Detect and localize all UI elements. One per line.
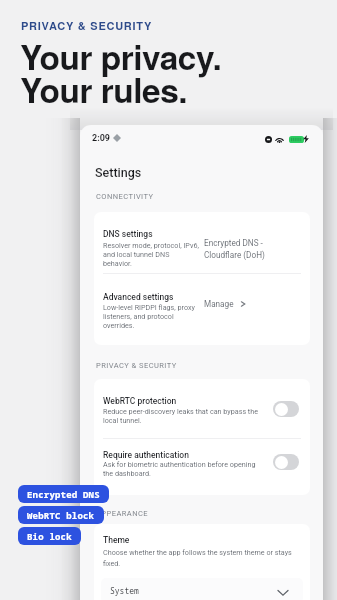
staticText: Encrypted DNS [27,488,100,500]
staticText: Low-level RIPDPI flags, proxy listeners,… [103,303,200,330]
button[interactable]: WebRTC block [18,506,104,524]
staticText: Resolver mode, protocol, IPv6, and local… [103,241,200,268]
staticText: Ask for biometric authentication before … [103,460,263,478]
other: Do not disturb [265,136,272,143]
staticText: Theme [103,535,130,545]
staticText: Advanced settings [103,292,174,302]
staticText: Reduce peer-discovery leaks that can byp… [103,407,263,425]
staticText: APPEARANCE [96,509,149,518]
staticText: Require authentication [103,450,189,460]
staticText: Choose whether the app follows the syste… [103,548,303,568]
button[interactable]: Encrypted DNS [18,485,109,503]
staticText: Manage [204,299,234,309]
button[interactable]: WebRTC protection [103,396,301,406]
other: Wi-Fi [275,136,284,143]
staticText: Settings [95,165,142,180]
staticText: Your privacy. Your rules. [20,32,222,114]
staticText: Encrypted DNS - Cloudflare (DoH) [204,238,265,260]
staticText: CONNECTIVITY [96,192,154,201]
staticText: System [110,585,139,596]
button[interactable]: Manage [204,299,247,309]
staticText: DNS settings [103,229,153,239]
button[interactable]: Require authentication [103,450,301,460]
button[interactable]: Toggle setting [273,454,299,470]
button[interactable]: Theme [103,535,301,545]
button[interactable]: Advanced settings [103,292,301,302]
staticText: WebRTC block [27,509,95,521]
other: Battery charging [289,136,304,143]
staticText: WebRTC protection [103,396,177,406]
staticText: PRIVACY & SECURITY [21,18,153,34]
button[interactable]: System [101,578,303,600]
button[interactable]: DNS settings [103,229,301,239]
staticText: Bio lock [27,530,72,542]
staticText: PRIVACY & SECURITY [96,361,177,370]
button[interactable]: Toggle setting [273,401,299,417]
staticText: 2:09 [92,133,111,144]
button[interactable]: Bio lock [18,527,81,545]
